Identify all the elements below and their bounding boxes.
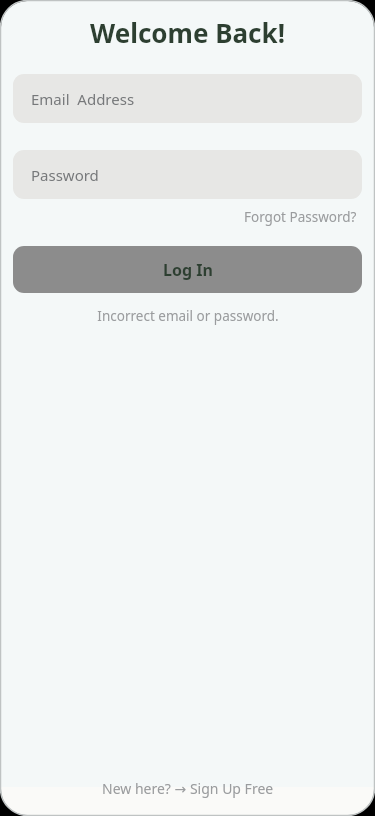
button[interactable]: Email Address	[13, 74, 362, 123]
staticText: Email Address	[31, 89, 135, 109]
button[interactable]: New here? → Sign Up Free	[96, 775, 280, 802]
staticText: Forgot Password?	[244, 208, 357, 226]
staticText: Welcome Back!	[90, 15, 285, 50]
staticText: Log In	[163, 259, 213, 281]
button[interactable]: Forgot Password?	[242, 205, 359, 229]
staticText: New here? → Sign Up Free	[102, 779, 274, 798]
staticText: Incorrect email or password.	[97, 307, 279, 325]
button[interactable]: Log In	[13, 246, 362, 293]
button[interactable]: Password	[13, 150, 362, 199]
staticText: Password	[31, 165, 99, 185]
